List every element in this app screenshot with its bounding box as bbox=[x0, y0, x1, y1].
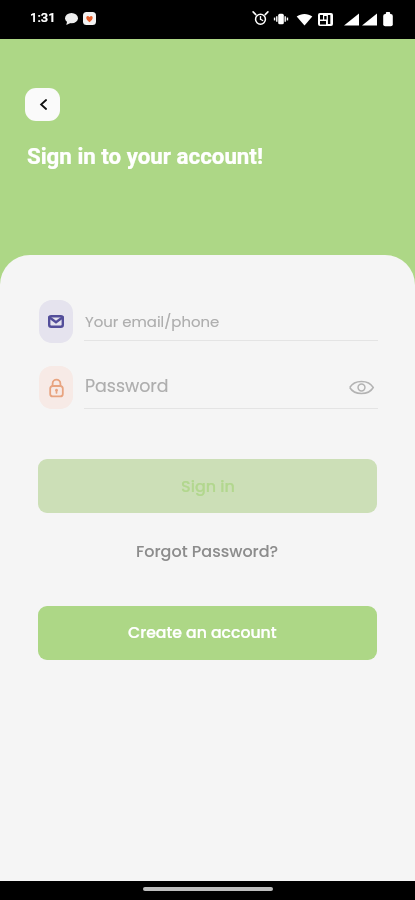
button[interactable]: Sign in bbox=[38, 459, 377, 513]
staticText: Sign in bbox=[181, 475, 235, 497]
staticText: Create an account bbox=[128, 622, 277, 644]
staticText: Sign in to your account! bbox=[27, 143, 263, 169]
staticText: Password bbox=[85, 374, 169, 398]
staticText: Your email/phone bbox=[85, 311, 220, 332]
staticText: 1:31 bbox=[30, 10, 56, 25]
button[interactable]: Create an account bbox=[38, 606, 377, 660]
button[interactable]: Back bbox=[25, 88, 60, 121]
button[interactable]: Forgot Password? bbox=[136, 540, 279, 562]
button[interactable]: Show password bbox=[346, 372, 376, 402]
